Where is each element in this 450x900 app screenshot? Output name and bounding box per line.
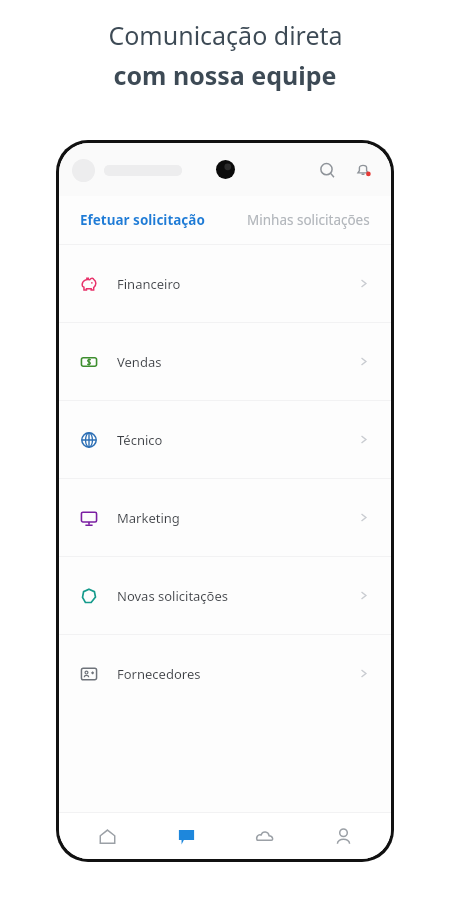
- button[interactable]: Notificações: [348, 155, 378, 185]
- button[interactable]: Fornecedores: [59, 635, 391, 712]
- button[interactable]: Minhas solicitações: [225, 196, 391, 244]
- staticText: Efetuar solicitação: [80, 211, 205, 229]
- button[interactable]: Início: [77, 813, 137, 859]
- button[interactable]: Vendas: [59, 323, 391, 400]
- button[interactable]: Marketing: [59, 479, 391, 556]
- staticText: Vendas: [117, 353, 162, 371]
- button[interactable]: Efetuar solicitação: [59, 196, 225, 244]
- staticText: Marketing: [117, 509, 180, 527]
- button[interactable]: Nuvem: [234, 813, 294, 859]
- staticText: Técnico: [117, 431, 163, 449]
- button[interactable]: Novas solicitações: [59, 557, 391, 634]
- staticText: Financeiro: [117, 275, 181, 293]
- button[interactable]: Conta: [313, 813, 373, 859]
- staticText: com nossa equipe: [113, 58, 337, 92]
- staticText: Fornecedores: [117, 665, 201, 683]
- button[interactable]: Perfil: [72, 159, 95, 182]
- staticText: Comunicação direta: [108, 18, 343, 52]
- button[interactable]: Buscar: [312, 155, 342, 185]
- button[interactable]: Financeiro: [59, 245, 391, 322]
- button[interactable]: Técnico: [59, 401, 391, 478]
- staticText: Minhas solicitações: [247, 211, 370, 229]
- staticText: Novas solicitações: [117, 587, 229, 605]
- button[interactable]: Mensagens: [156, 813, 216, 859]
